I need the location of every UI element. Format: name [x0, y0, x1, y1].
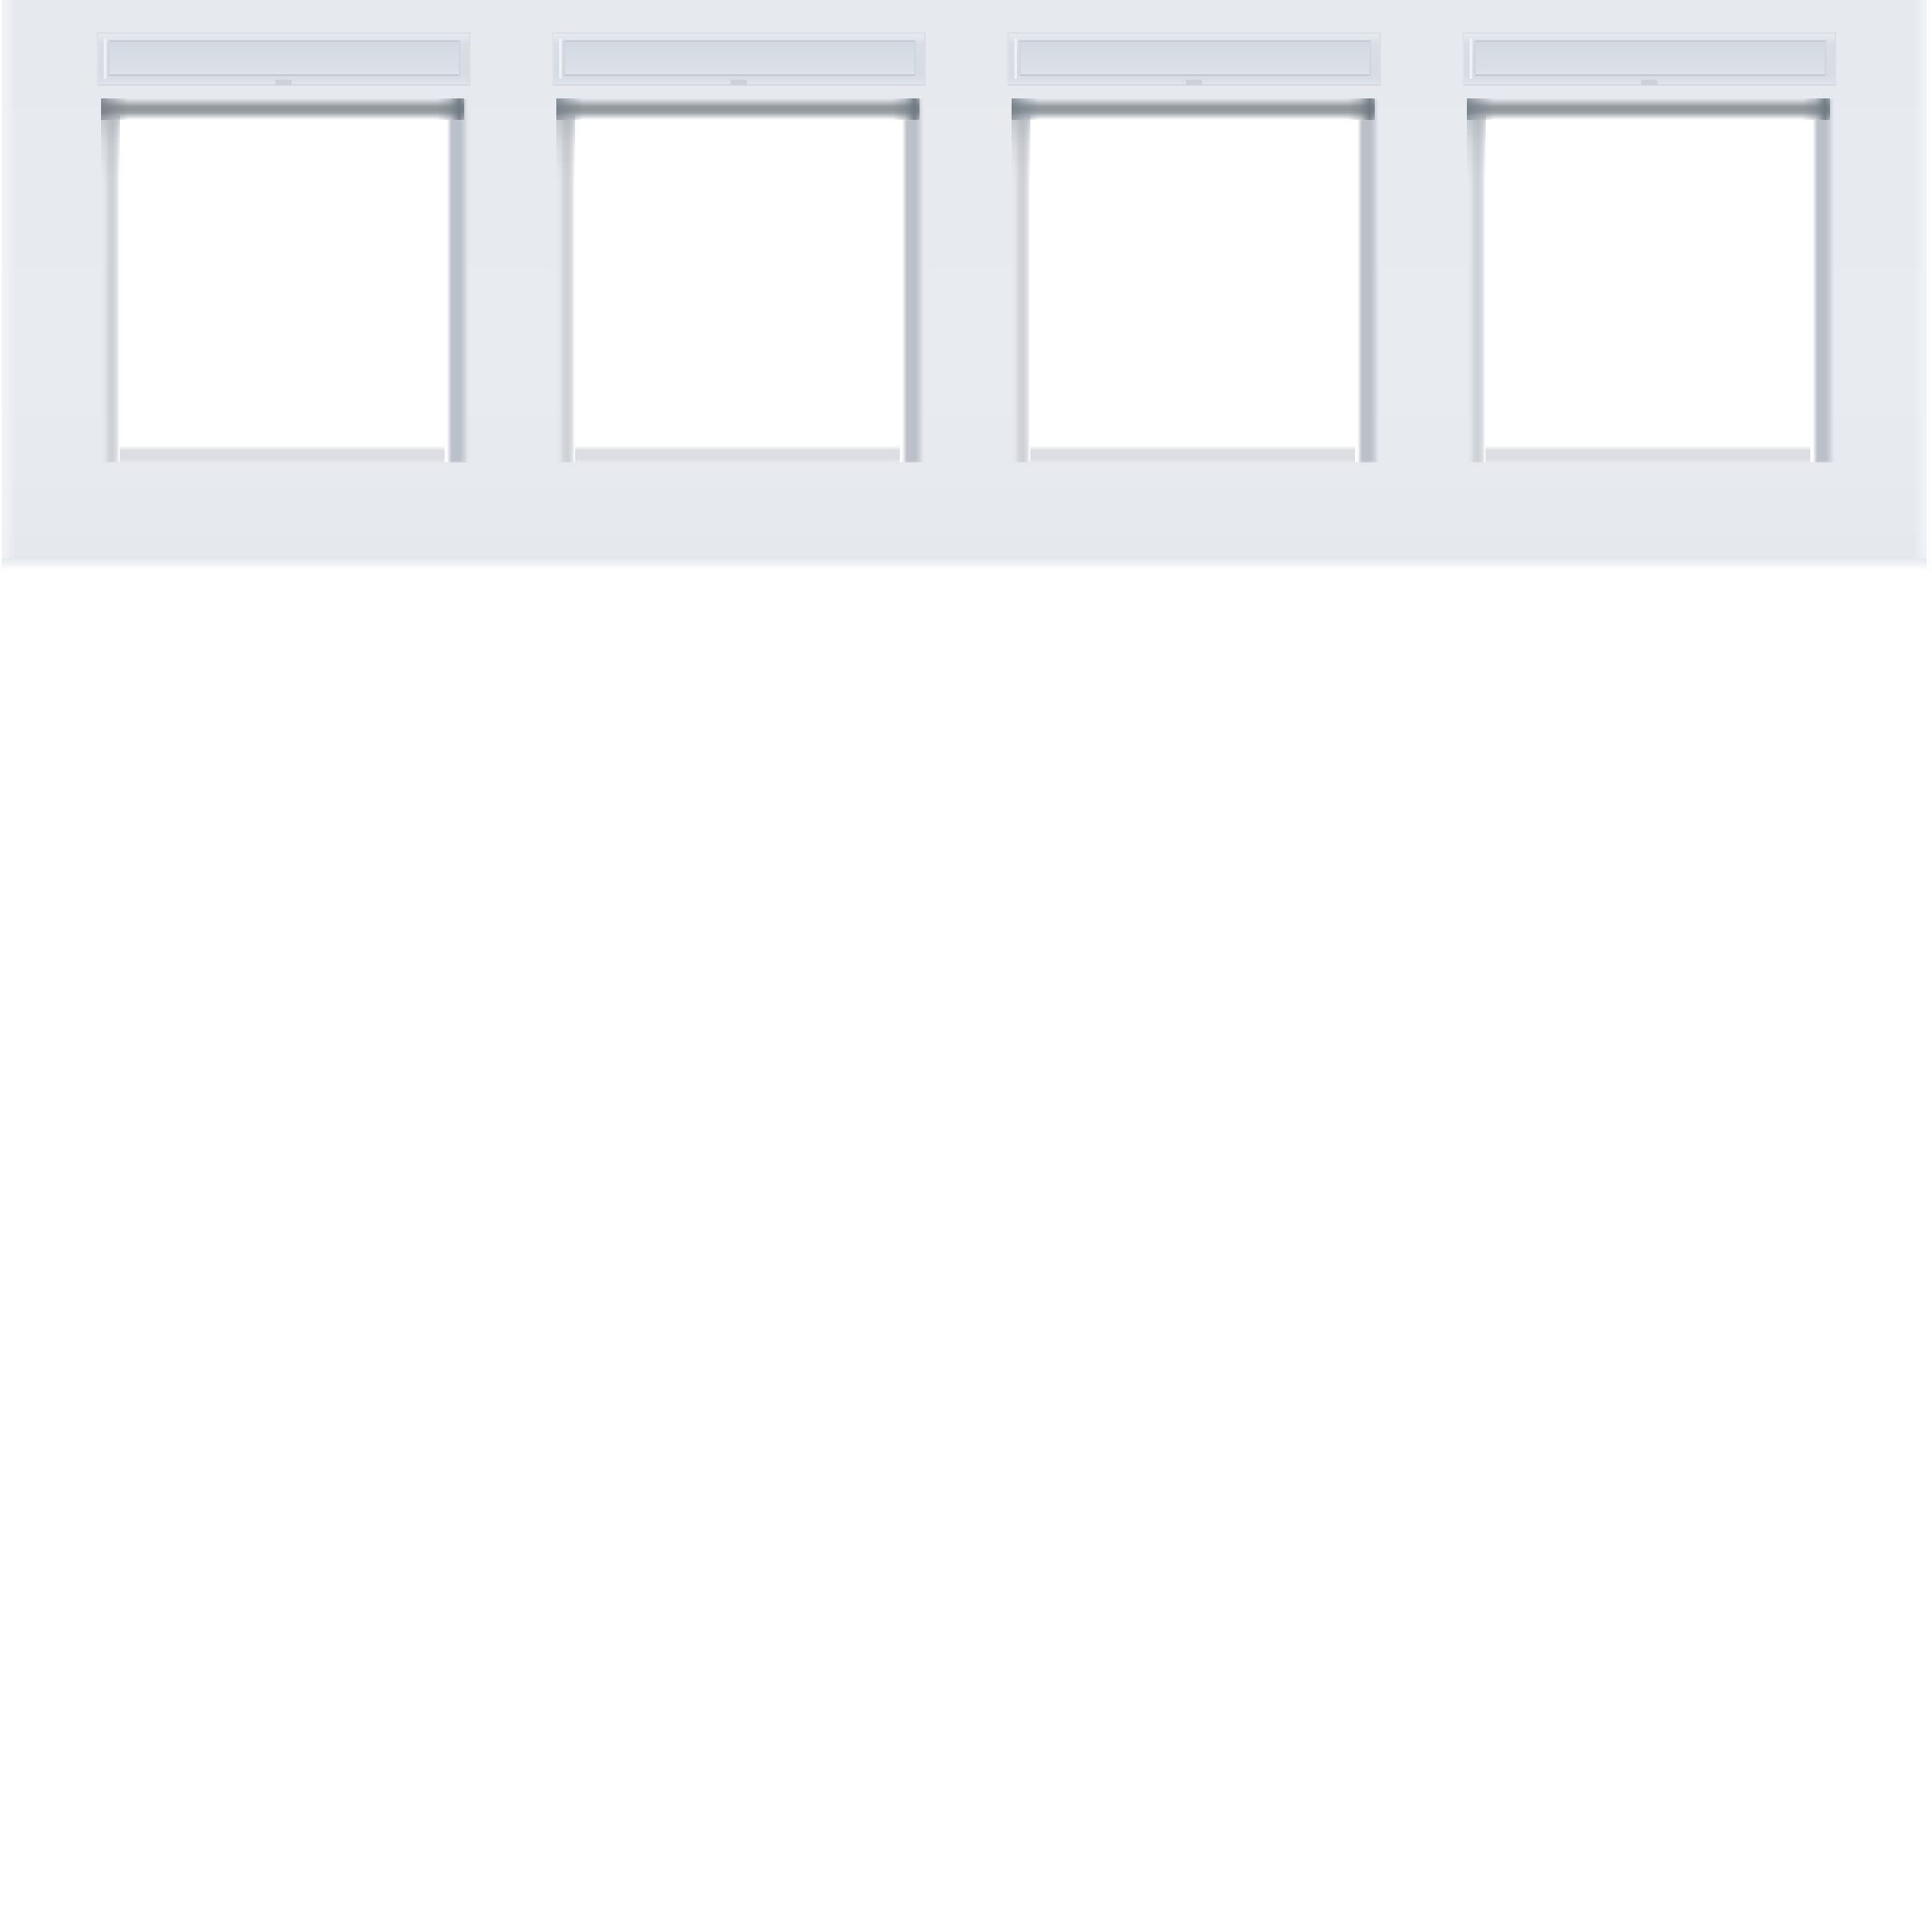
button[interactable]: Module 4 — [683, 0, 1932, 1213]
button[interactable]: Module 3 — [228, 0, 1932, 1213]
button[interactable]: Module 2 — [0, 0, 1705, 1213]
button[interactable]: Module 1 — [0, 0, 1250, 1213]
